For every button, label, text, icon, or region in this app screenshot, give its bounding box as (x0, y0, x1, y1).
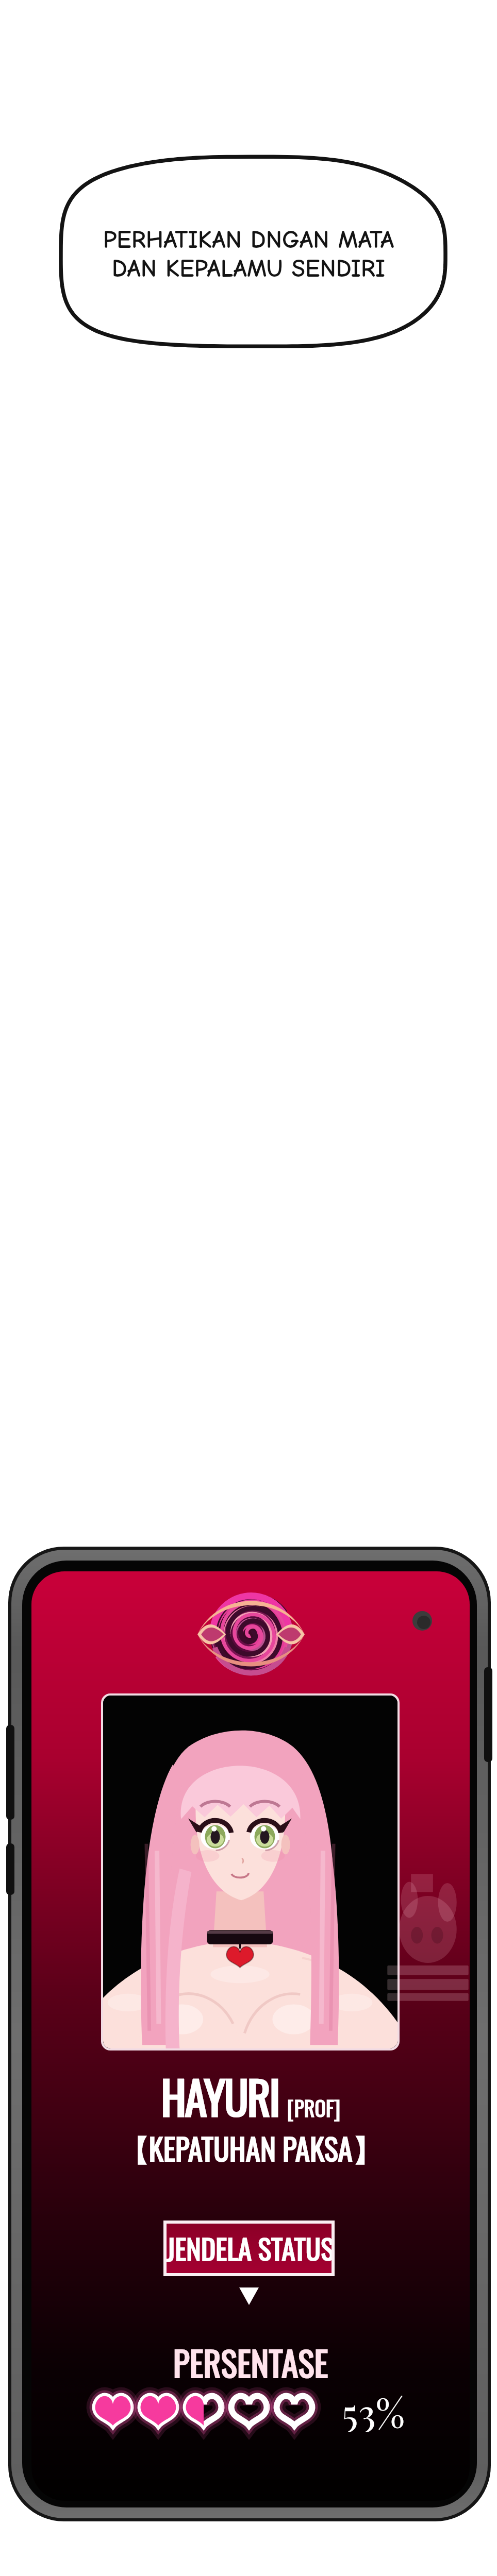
staticText: PERHATIKAN DNGAN MATA DAN KEPALAMU SENDI… (56, 226, 441, 283)
staticText: 【KEPATUHAN PAKSA】 (31, 2126, 470, 2170)
staticText: [PROF] (287, 2092, 341, 2123)
button[interactable]: JENDELA STATUS (167, 2224, 332, 2273)
staticText: HAYURI (161, 2062, 279, 2129)
button[interactable]: 【KEPATUHAN PAKSA】 (31, 2126, 470, 2170)
staticText: PERSENTASE (31, 2337, 470, 2387)
button[interactable]: HAYURI (31, 2062, 470, 2129)
button[interactable]: Hypnosis app logo (197, 1590, 305, 1675)
staticText: 53% (342, 2385, 405, 2432)
button[interactable]: Character portrait Hayuri (103, 1696, 397, 2048)
button[interactable]: PERSENTASE (31, 2337, 470, 2387)
staticText: JENDELA STATUS (167, 2228, 332, 2269)
